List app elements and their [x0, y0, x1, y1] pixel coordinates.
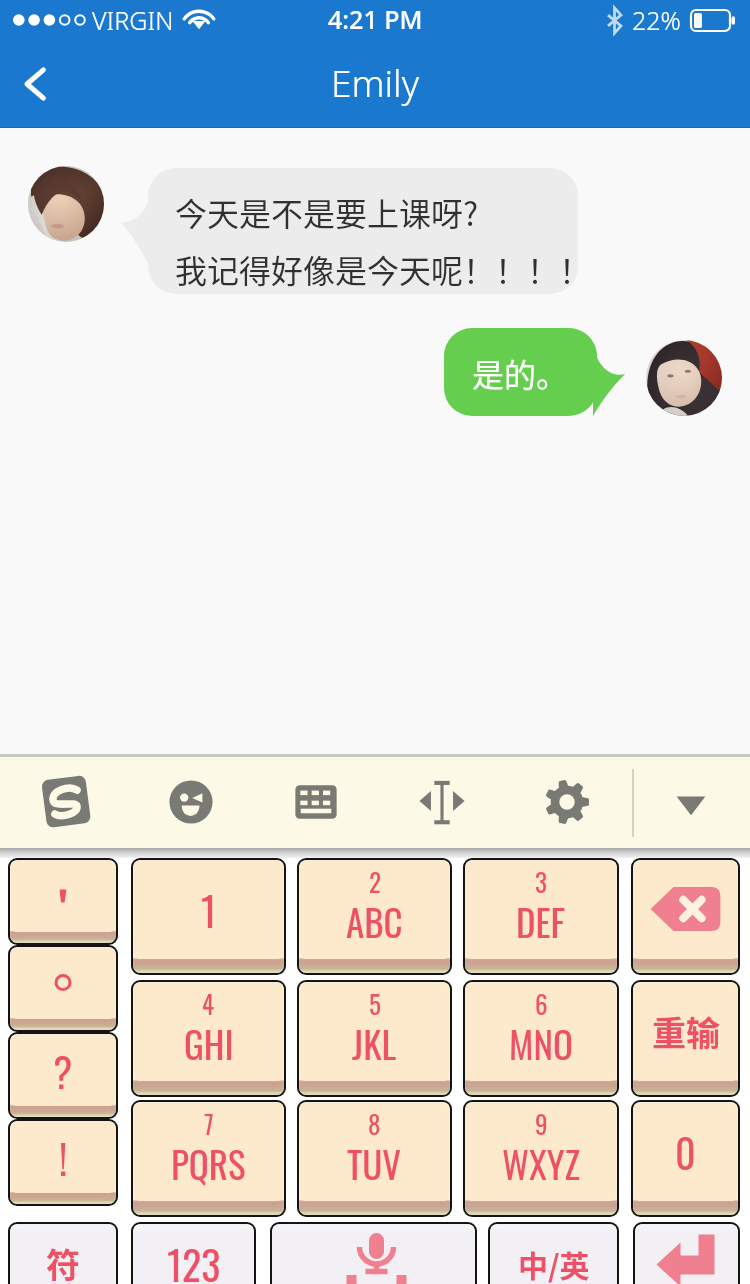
button[interactable]: 0: [631, 1100, 740, 1217]
button[interactable]: Period: [8, 945, 118, 1032]
staticText: 中/英: [518, 1242, 590, 1284]
staticText: 我记得好像是今天呢！！！！: [175, 246, 592, 292]
staticText: 6: [535, 985, 548, 1022]
staticText: JKL: [352, 1016, 397, 1071]
staticText: 123: [167, 1234, 221, 1284]
button[interactable]: 4: [131, 980, 286, 1097]
staticText: 2: [369, 863, 381, 900]
button[interactable]: 2: [297, 858, 452, 975]
staticText: 4: [202, 985, 215, 1022]
staticText: ABC: [346, 894, 403, 949]
staticText: Emily: [331, 57, 420, 107]
staticText: DEF: [516, 894, 566, 949]
button[interactable]: 1: [131, 858, 286, 975]
staticText: 符: [46, 1239, 80, 1284]
staticText: PQRS: [171, 1136, 246, 1191]
button[interactable]: Enter: [633, 1222, 740, 1284]
staticText: WXYZ: [502, 1136, 581, 1191]
button[interactable]: Comma: [8, 858, 118, 945]
staticText: 1: [201, 880, 217, 939]
staticText: MNO: [509, 1016, 573, 1071]
button[interactable]: 7: [131, 1100, 286, 1217]
button[interactable]: 123: [131, 1222, 256, 1284]
staticText: 是的。: [472, 350, 569, 396]
staticText: 4:21 PM: [328, 2, 423, 36]
staticText: 8: [368, 1105, 381, 1142]
staticText: ?: [53, 1041, 73, 1100]
staticText: 22%: [632, 3, 681, 37]
button[interactable]: Backspace: [631, 858, 740, 975]
staticText: TUV: [347, 1136, 402, 1191]
button[interactable]: Voice input: [270, 1222, 477, 1284]
button[interactable]: 6: [463, 980, 619, 1097]
staticText: !: [59, 1128, 68, 1187]
staticText: 重输: [652, 1007, 720, 1056]
button[interactable]: Emoji: [157, 768, 225, 836]
staticText: VIRGIN: [92, 3, 174, 37]
button[interactable]: 8: [297, 1100, 452, 1217]
staticText: 0: [675, 1122, 696, 1181]
button[interactable]: 中/英: [488, 1222, 619, 1284]
button[interactable]: Keyboard layout: [282, 768, 350, 836]
button[interactable]: Move cursor: [408, 768, 476, 836]
button[interactable]: ?: [8, 1032, 118, 1119]
button[interactable]: Hide keyboard: [657, 768, 725, 836]
staticText: 5: [369, 985, 381, 1022]
button[interactable]: 9: [463, 1100, 619, 1217]
staticText: 今天是不是要上课呀?: [175, 189, 479, 235]
staticText: 9: [535, 1105, 548, 1142]
button[interactable]: 重输: [631, 980, 740, 1097]
button[interactable]: !: [8, 1119, 118, 1206]
button[interactable]: Back: [0, 40, 76, 128]
button[interactable]: Settings: [533, 768, 601, 836]
staticText: 7: [204, 1105, 214, 1142]
button[interactable]: 3: [463, 858, 619, 975]
staticText: GHI: [184, 1016, 234, 1071]
staticText: 3: [535, 863, 547, 900]
button[interactable]: 符: [8, 1222, 118, 1284]
button[interactable]: Sogou input method: [33, 768, 101, 836]
button[interactable]: 5: [297, 980, 452, 1097]
